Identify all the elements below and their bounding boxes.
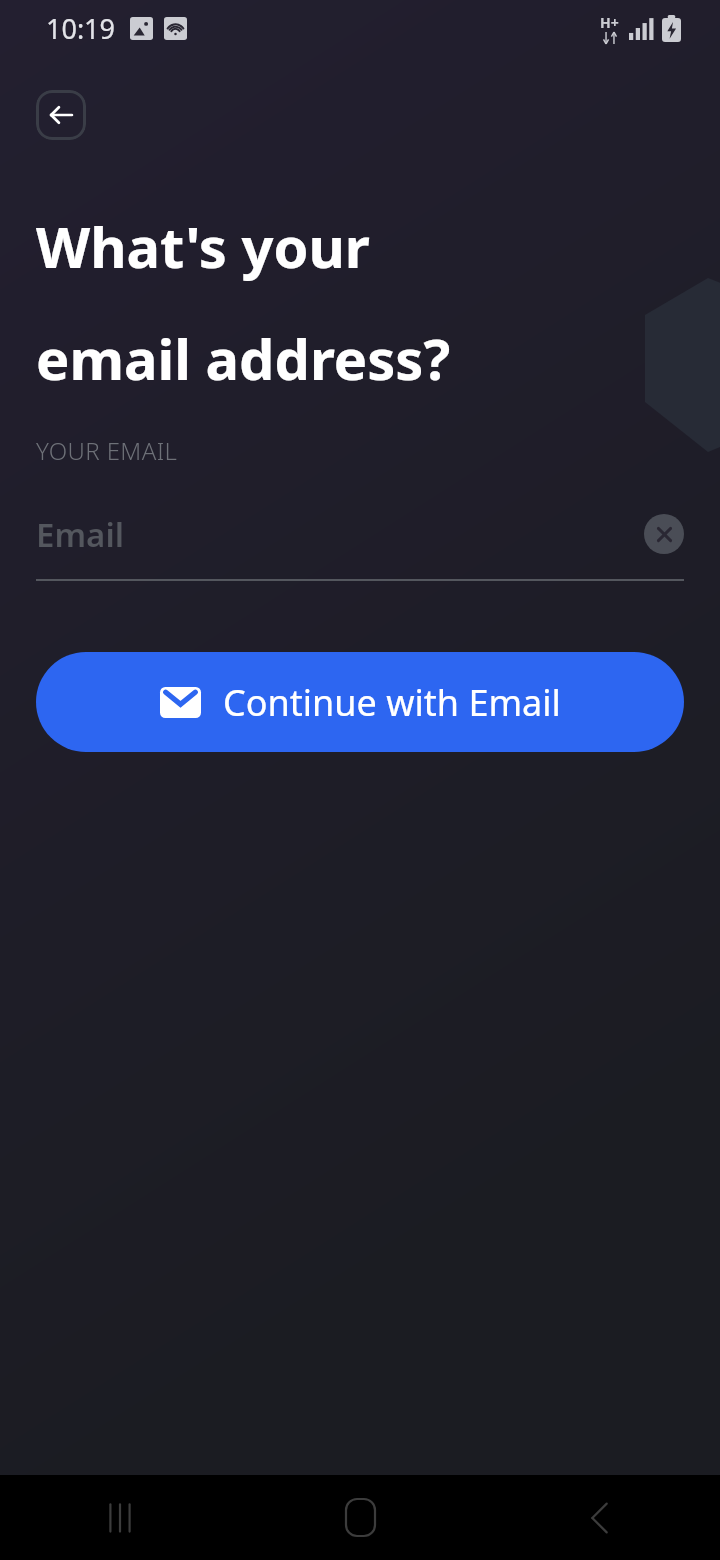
button[interactable]: Clear text — [644, 514, 684, 554]
staticText: 10:19 — [46, 10, 116, 47]
button[interactable]: Back — [480, 1475, 720, 1560]
button[interactable]: Home — [240, 1475, 480, 1560]
button[interactable]: Email — [36, 503, 684, 565]
staticText: Continue with Email — [223, 678, 561, 727]
staticText: Email — [36, 512, 644, 557]
button[interactable]: Recent apps — [0, 1475, 240, 1560]
staticText: H+ — [600, 13, 619, 32]
staticText: What's your email address? — [36, 208, 520, 396]
button[interactable]: Continue with Email — [36, 652, 684, 752]
button[interactable]: Back — [36, 90, 86, 140]
staticText: YOUR EMAIL — [36, 434, 178, 467]
